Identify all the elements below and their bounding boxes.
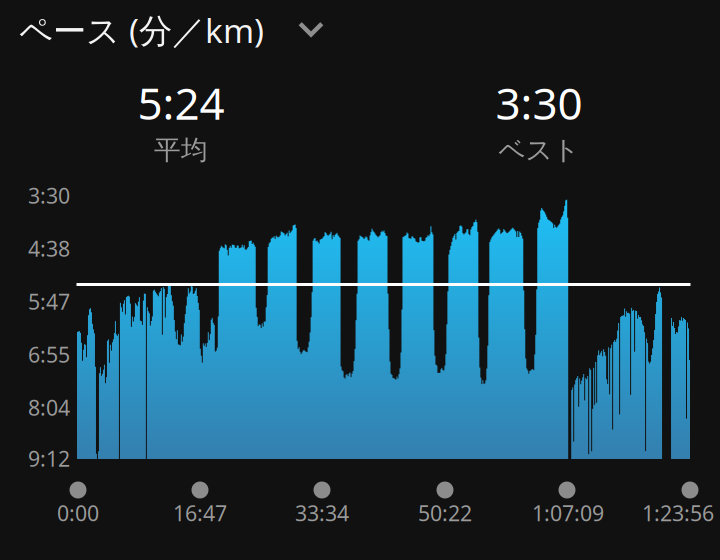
staticText: 3:30 [28,181,70,210]
staticText: 1:23:56 [642,499,714,527]
staticText: 6:55 [28,340,70,369]
staticText: 8:04 [28,393,70,422]
staticText: 4:38 [28,234,70,263]
staticText: 16:47 [173,499,227,527]
staticText: 5:47 [28,287,70,316]
staticText: 33:34 [295,499,349,527]
staticText: 9:12 [28,444,70,473]
staticText: ペース (分／km) [19,8,264,52]
staticText: 3:30 [495,73,582,132]
staticText: 1:07:09 [532,499,604,527]
staticText: 平均 [154,134,208,167]
staticText: ベスト [498,134,579,167]
staticText: 50:22 [418,499,472,527]
staticText: 5:24 [137,73,224,132]
staticText: 0:00 [57,499,99,527]
button[interactable]: ペース (分／km) [0,1,400,59]
